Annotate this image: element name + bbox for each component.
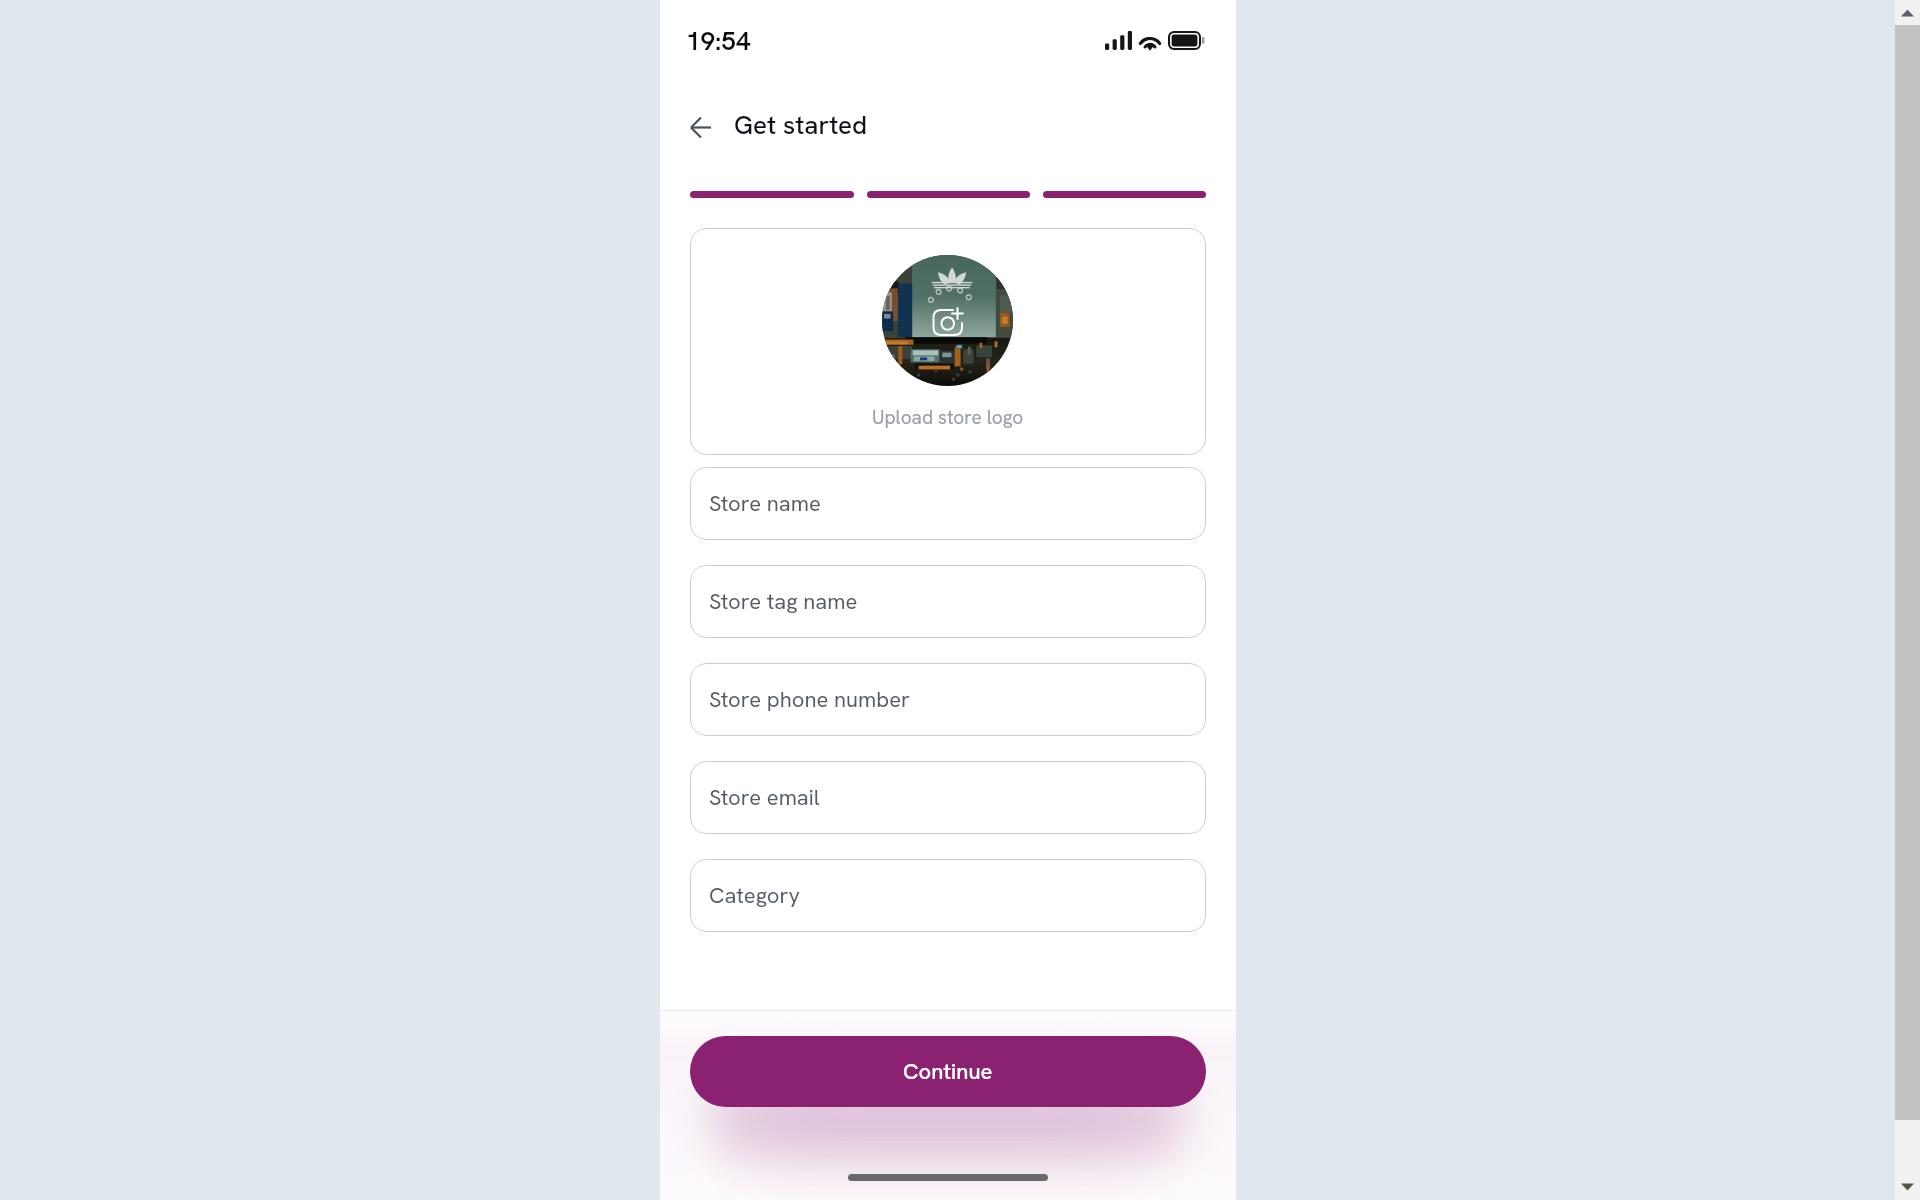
button[interactable]: Category [690,859,1206,932]
button[interactable]: Back [680,107,720,147]
staticText: Get started [734,108,868,142]
button[interactable]: Continue [690,1036,1206,1107]
button[interactable]: Store email [690,761,1206,834]
staticText: Continue [903,1057,993,1086]
staticText: Store tag name [709,587,858,616]
staticText: 19:54 [686,24,751,58]
button[interactable]: Upload store logo [690,228,1206,455]
button[interactable]: Store name [690,467,1206,540]
button[interactable]: Store phone number [690,663,1206,736]
staticText: Store email [709,783,820,812]
button[interactable]: Store tag name [690,565,1206,638]
staticText: Upload store logo [872,405,1024,430]
staticText: Store phone number [709,685,911,714]
staticText: Store name [709,489,821,518]
staticText: Category [709,881,800,910]
